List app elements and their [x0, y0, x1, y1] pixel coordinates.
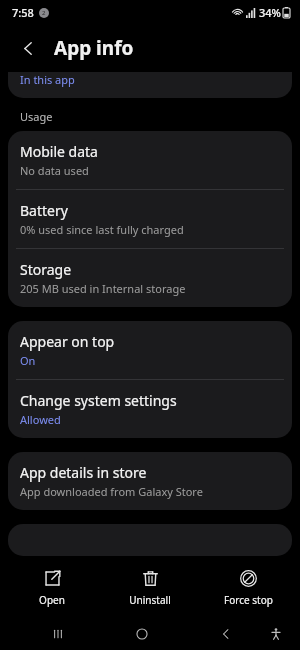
button[interactable]: Storage [8, 249, 292, 307]
staticText: 205 MB used in Internal storage [20, 281, 186, 296]
button[interactable]: App details in store [8, 452, 292, 510]
staticText: Allowed [20, 412, 61, 427]
staticText: In this app [20, 72, 75, 87]
staticText: App info [54, 35, 134, 61]
staticText: Change system settings [20, 391, 177, 410]
staticText: 7:58 [12, 5, 34, 20]
button[interactable]: Back [208, 618, 244, 650]
staticText: Usage [20, 109, 53, 124]
staticText: Force stop [224, 593, 273, 607]
staticText: Battery [20, 201, 68, 220]
button[interactable]: Accessibility [258, 618, 294, 650]
staticText: Appear on top [20, 332, 115, 351]
staticText: 34% [259, 5, 281, 20]
staticText: Open [39, 593, 65, 607]
button[interactable]: Change system settings [8, 380, 292, 438]
staticText: Storage [20, 260, 72, 279]
button[interactable]: Back [10, 30, 46, 66]
staticText: 2 [42, 9, 46, 17]
button[interactable]: Recent apps [40, 618, 76, 650]
button[interactable]: Force stop [202, 562, 294, 613]
staticText: App details in store [20, 463, 147, 482]
button[interactable]: Version 6.1.90.16 [8, 524, 292, 556]
staticText: App downloaded from Galaxy Store [20, 484, 203, 499]
button[interactable]: Mobile data [8, 131, 292, 189]
staticText: 0% used since last fully charged [20, 222, 184, 237]
staticText: Uninstall [129, 593, 171, 607]
staticText: No data used [20, 163, 89, 178]
staticText: Mobile data [20, 142, 98, 161]
button[interactable]: Appear on top [8, 321, 292, 379]
button[interactable]: Home [124, 618, 160, 650]
button[interactable]: Uninstall [104, 562, 196, 613]
button[interactable]: Open [6, 562, 98, 613]
button[interactable]: In this app [8, 72, 292, 98]
staticText: On [20, 353, 36, 368]
button[interactable]: Battery [8, 190, 292, 248]
